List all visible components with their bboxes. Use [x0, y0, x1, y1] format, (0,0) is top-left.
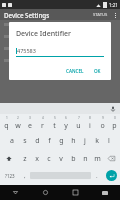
button[interactable]: 6 [60, 114, 72, 132]
button[interactable]: Home [30, 185, 60, 200]
staticText: w [15, 121, 21, 131]
staticText: j [84, 136, 86, 146]
button[interactable]: Shift [0, 150, 18, 167]
staticText: 475583 [17, 47, 36, 54]
staticText: 7 [78, 116, 80, 120]
button[interactable]: f [43, 132, 55, 150]
staticText: CANCEL [66, 68, 84, 74]
button[interactable]: l [103, 132, 115, 150]
button[interactable]: 8 [84, 114, 96, 132]
button[interactable]: j [79, 132, 91, 150]
staticText: y [64, 121, 68, 131]
staticText: 0 [114, 116, 116, 120]
staticText: 1 [6, 116, 8, 120]
staticText: q [4, 121, 9, 131]
staticText: m [94, 154, 101, 164]
staticText: l [108, 136, 110, 146]
button[interactable]: Back [0, 185, 30, 200]
staticText: n [83, 154, 88, 164]
button[interactable]: g [55, 132, 67, 150]
staticText: 6 [65, 116, 67, 120]
staticText: Device Settings [4, 11, 50, 19]
staticText: r [41, 121, 44, 131]
staticText: 1:21 [109, 2, 118, 8]
staticText: u [76, 121, 81, 131]
button[interactable]: 2 [12, 114, 24, 132]
button[interactable]: 5 [48, 114, 60, 132]
staticText: c [47, 154, 51, 164]
staticText: f [48, 136, 51, 146]
staticText: , [24, 172, 26, 180]
staticText: STATUS [93, 12, 108, 18]
button[interactable]: 9 [96, 114, 108, 132]
button[interactable]: v [55, 150, 67, 167]
button[interactable]: ?123 [0, 167, 19, 184]
button[interactable]: STATUS [91, 12, 110, 18]
staticText: ?123 [5, 173, 15, 179]
button[interactable]: h [67, 132, 79, 150]
button[interactable]: CANCEL [63, 66, 87, 76]
staticText: v [59, 154, 63, 164]
button[interactable]: a [5, 132, 18, 150]
staticText: d [35, 136, 40, 146]
button[interactable]: 4 [36, 114, 48, 132]
staticText: t [53, 121, 56, 131]
button[interactable]: 0 [108, 114, 120, 132]
button[interactable]: . [91, 167, 102, 184]
button[interactable]: n [79, 150, 91, 167]
staticText: k [95, 136, 99, 146]
button[interactable]: b [67, 150, 79, 167]
staticText: 3 [29, 116, 31, 120]
button[interactable]: m [91, 150, 103, 167]
button[interactable]: Voice input [109, 105, 117, 113]
staticText: s [23, 136, 27, 146]
button[interactable]: s [18, 132, 31, 150]
button[interactable]: Enter [102, 167, 120, 184]
button[interactable]: x [31, 150, 43, 167]
staticText: x [35, 154, 39, 164]
staticText: z [23, 154, 27, 164]
staticText: h [71, 136, 76, 146]
staticText: p [112, 121, 117, 131]
staticText: . [96, 172, 98, 180]
staticText: i [89, 121, 91, 131]
staticText: 5 [54, 116, 56, 120]
staticText: 8 [89, 116, 91, 120]
button[interactable]: More options [110, 10, 120, 20]
button[interactable]: , [19, 167, 30, 184]
staticText: b [71, 154, 76, 164]
staticText: OK [94, 68, 101, 74]
button[interactable]: 475583 [16, 47, 104, 57]
staticText: 2 [17, 116, 19, 120]
button[interactable]: k [91, 132, 103, 150]
button[interactable]: d [31, 132, 43, 150]
button[interactable]: 7 [72, 114, 84, 132]
staticText: Device Identifier [16, 29, 72, 39]
staticText: g [59, 136, 64, 146]
button[interactable]: z [18, 150, 31, 167]
button[interactable]: Delete [103, 150, 120, 167]
staticText: 4 [42, 116, 44, 120]
button[interactable]: 1 [0, 114, 12, 132]
button[interactable]: OK [91, 66, 104, 76]
button[interactable]: 3 [24, 114, 36, 132]
staticText: o [100, 121, 105, 131]
staticText: a [10, 136, 14, 146]
button[interactable]: c [43, 150, 55, 167]
button[interactable]: Recent apps [60, 185, 90, 200]
staticText: e [28, 121, 32, 131]
button[interactable]: Switch keyboard [90, 185, 120, 200]
staticText: 9 [102, 116, 104, 120]
